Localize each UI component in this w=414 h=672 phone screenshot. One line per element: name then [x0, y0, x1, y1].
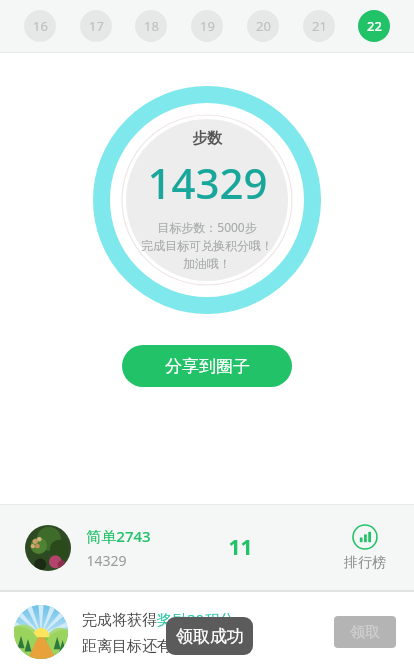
staticText: 20 [256, 17, 271, 35]
staticText: 加油哦！ [183, 256, 231, 271]
button[interactable]: 领取 [334, 616, 396, 648]
staticText: 完成将获得奖励30积分 [82, 609, 235, 629]
button[interactable]: 19 [191, 10, 223, 42]
staticText: 19 [200, 17, 215, 35]
button[interactable]: 分享到圈子 [122, 345, 292, 387]
staticText: 分享到圈子 [165, 356, 250, 377]
staticText: 17 [89, 17, 104, 35]
staticText: 22 [367, 17, 382, 35]
staticText: 步数 [192, 129, 222, 148]
staticText: 11 [228, 533, 253, 562]
staticText: 排行榜 [344, 554, 386, 572]
button[interactable]: 17 [80, 10, 112, 42]
staticText: 14329 [147, 154, 268, 211]
staticText: 16 [33, 17, 48, 35]
button[interactable]: 21 [303, 10, 335, 42]
button[interactable]: 16 [24, 10, 56, 42]
staticText: 距离目标还有0 [82, 635, 181, 655]
staticText: 领取 [350, 623, 380, 642]
staticText: 18 [144, 17, 159, 35]
button[interactable]: 简单2743 [0, 505, 414, 590]
staticText: 完成目标可兑换积分哦！ [141, 238, 273, 253]
button[interactable]: 18 [135, 10, 167, 42]
staticText: 领取成功 [176, 626, 244, 647]
staticText: 简单2743 [86, 526, 151, 546]
staticText: 14329 [86, 551, 127, 570]
button[interactable]: 排行榜 [338, 524, 392, 572]
button[interactable]: 22 [358, 10, 390, 42]
button[interactable]: 20 [247, 10, 279, 42]
staticText: 目标步数：5000步 [157, 219, 257, 235]
staticText: 21 [312, 17, 327, 35]
